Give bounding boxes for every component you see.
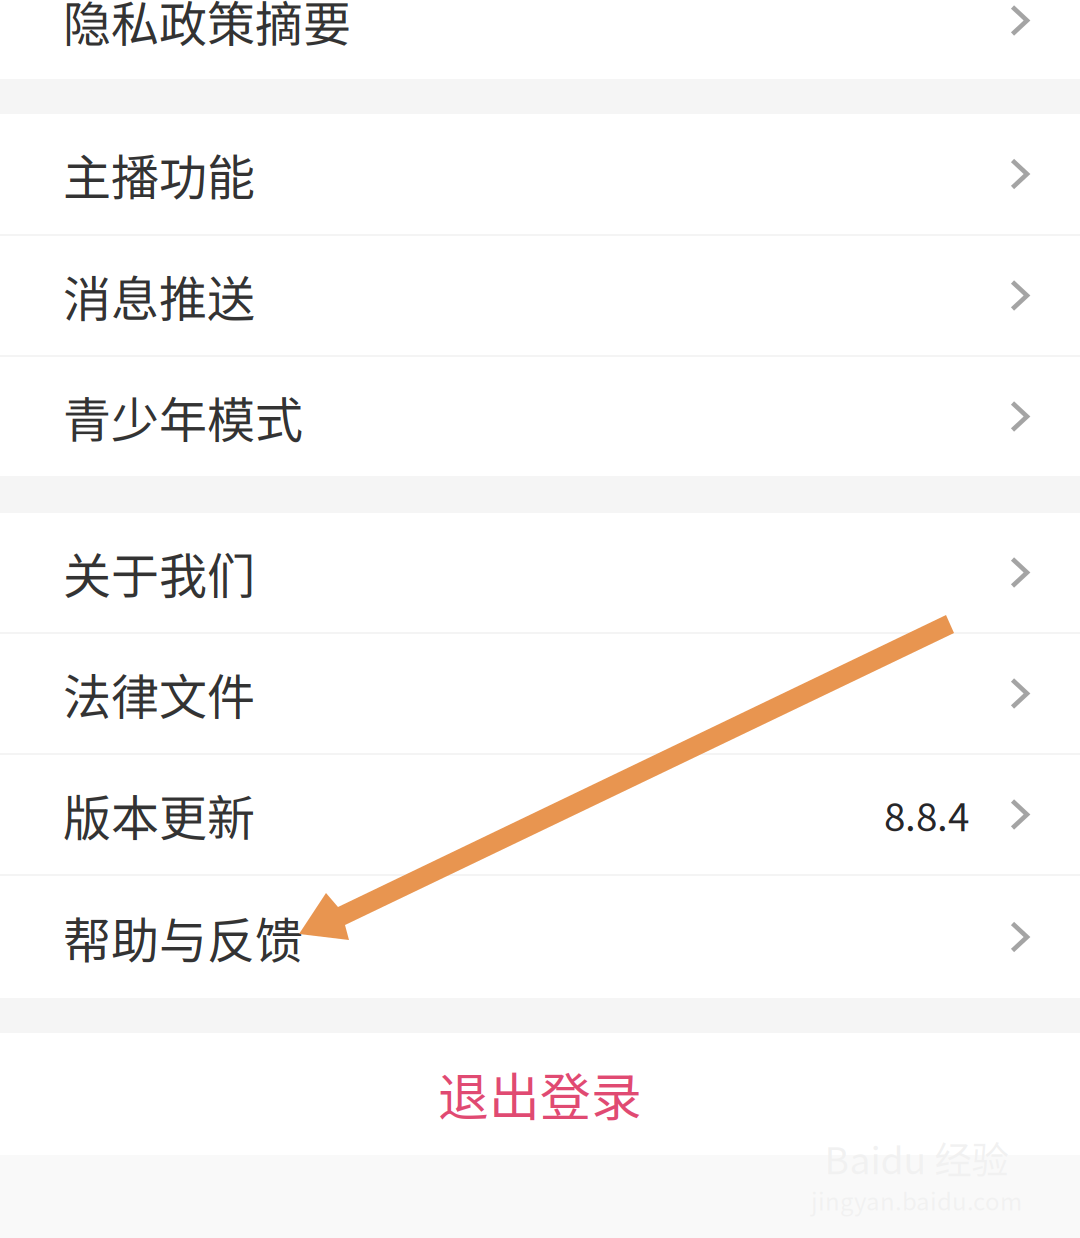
staticText: 8.8.4 <box>884 786 969 842</box>
staticText: 隐私政策摘要 <box>63 0 351 55</box>
button[interactable]: 青少年模式 <box>0 357 1080 476</box>
staticText: 青少年模式 <box>63 382 303 451</box>
staticText: 帮助与反馈 <box>63 902 303 972</box>
staticText: 版本更新 <box>63 780 255 849</box>
staticText: 法律文件 <box>63 659 255 728</box>
button[interactable]: 帮助与反馈 <box>0 876 1080 998</box>
staticText: 消息推送 <box>63 261 255 330</box>
button[interactable]: 主播功能 <box>0 114 1080 236</box>
staticText: 关于我们 <box>63 538 255 607</box>
button[interactable]: 版本更新 <box>0 755 1080 876</box>
button[interactable]: 消息推送 <box>0 236 1080 357</box>
button[interactable]: 隐私政策摘要 <box>0 0 1080 79</box>
staticText: 退出登录 <box>438 1057 642 1131</box>
button[interactable]: 法律文件 <box>0 634 1080 755</box>
staticText: Baidu 经验 <box>824 1131 1008 1185</box>
button[interactable]: 关于我们 <box>0 513 1080 634</box>
staticText: 主播功能 <box>63 139 255 209</box>
button[interactable]: 退出登录 <box>0 1033 1080 1155</box>
